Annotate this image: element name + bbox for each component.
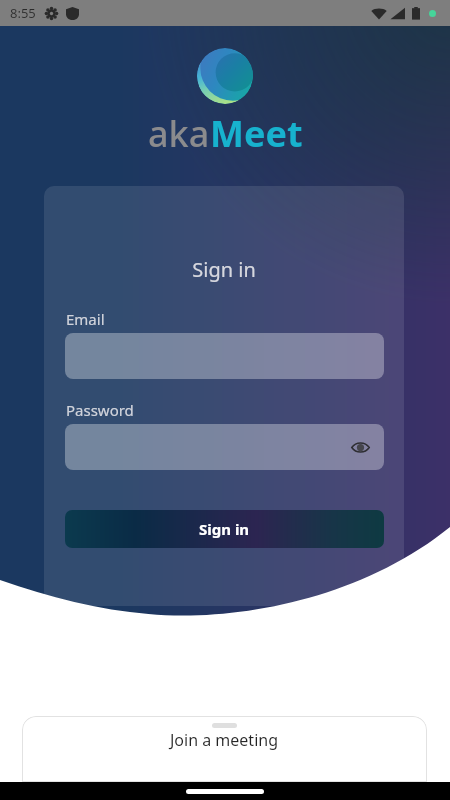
staticText: Password	[66, 400, 134, 420]
staticText: Sign in	[44, 256, 404, 283]
button[interactable]	[65, 333, 384, 379]
button[interactable]: Show password	[347, 434, 373, 460]
staticText: 8:55	[10, 4, 36, 22]
staticText: Meet	[210, 109, 303, 158]
staticText: Email	[66, 309, 105, 329]
button[interactable]: Sign in	[65, 510, 384, 548]
staticText: aka	[148, 109, 210, 158]
staticText: Join a meeting	[170, 729, 279, 751]
button[interactable]: Join a meeting	[22, 716, 427, 782]
button[interactable]: Show password	[65, 424, 384, 470]
staticText: Sign in	[199, 519, 250, 539]
